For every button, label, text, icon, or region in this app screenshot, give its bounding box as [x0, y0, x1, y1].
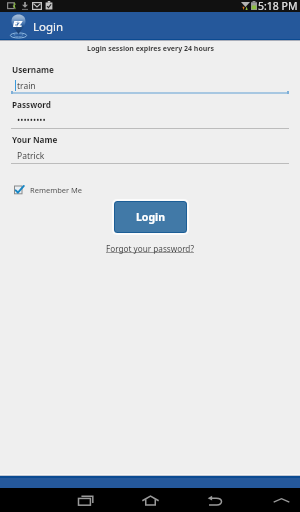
- button[interactable]: Forgot your password?: [106, 243, 194, 254]
- staticText: Patrick: [17, 150, 45, 162]
- staticText: Forgot your password?: [106, 243, 194, 254]
- button[interactable]: Home: [136, 488, 164, 512]
- staticText: Password: [12, 99, 52, 110]
- button[interactable]: Recents: [71, 488, 99, 512]
- staticText: Remember Me: [30, 185, 83, 195]
- staticText: train: [17, 80, 36, 92]
- button[interactable]: Login: [115, 202, 186, 232]
- button[interactable]: Back: [201, 488, 229, 512]
- staticText: Username: [12, 64, 54, 75]
- button[interactable]: App logo: [10, 14, 27, 39]
- staticText: 5:18 PM: [258, 0, 298, 11]
- button[interactable]: Expand: [267, 488, 295, 512]
- staticText: Login: [136, 210, 166, 224]
- button[interactable]: Remember Me: [12, 184, 83, 195]
- staticText: EZ: [13, 18, 22, 29]
- staticText: Login session expires every 24 hours: [87, 44, 214, 54]
- staticText: •••••••••: [17, 114, 46, 126]
- staticText: Login: [33, 19, 64, 35]
- staticText: Your Name: [12, 134, 58, 145]
